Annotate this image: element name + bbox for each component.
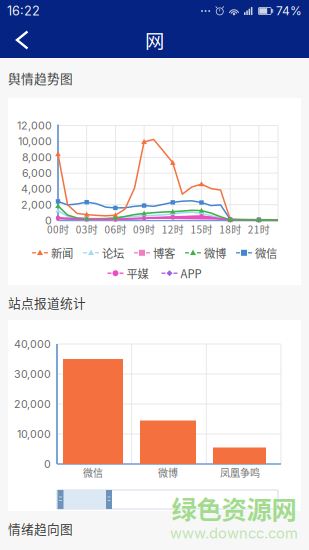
staticText: 09时: [133, 222, 155, 236]
staticText: 06时: [104, 222, 126, 236]
staticText: APP: [180, 265, 201, 281]
staticText: 平媒: [126, 265, 148, 281]
staticText: 00时: [47, 222, 69, 236]
staticText: 20,000: [14, 397, 51, 410]
staticText: 微博: [204, 245, 226, 261]
button[interactable]: Back: [0, 22, 48, 58]
staticText: www.downcc.com: [170, 524, 298, 542]
staticText: 0: [44, 457, 51, 470]
staticText: 4,000: [21, 182, 52, 195]
staticText: 博客: [153, 245, 175, 261]
staticText: 绿色资源网: [171, 490, 296, 526]
staticText: 12时: [162, 222, 184, 236]
staticText: 微信: [83, 465, 103, 480]
staticText: 18时: [219, 222, 241, 236]
staticText: 2,000: [21, 198, 52, 211]
staticText: 12,000: [17, 119, 52, 132]
staticText: 站点报道统计: [8, 293, 86, 312]
staticText: 论坛: [102, 245, 124, 261]
staticText: 情绪趋向图: [8, 519, 73, 538]
staticText: 10,000: [17, 427, 51, 440]
staticText: 03时: [76, 222, 98, 236]
staticText: 0: [45, 214, 52, 227]
staticText: 74%: [276, 4, 302, 18]
staticText: 15时: [190, 222, 212, 236]
staticText: 30,000: [14, 367, 51, 380]
staticText: 微信: [255, 245, 277, 261]
staticText: 微博: [158, 465, 178, 480]
staticText: 21时: [248, 222, 270, 236]
staticText: 网: [145, 26, 164, 54]
staticText: 40,000: [14, 337, 51, 350]
staticText: 舆情趋势图: [8, 69, 73, 87]
staticText: 凤凰争鸣: [220, 465, 260, 480]
staticText: 新闻: [51, 245, 73, 261]
staticText: 8,000: [22, 151, 52, 164]
staticText: 10,000: [18, 135, 52, 148]
staticText: 16:22: [7, 3, 40, 19]
staticText: 6,000: [22, 167, 52, 179]
